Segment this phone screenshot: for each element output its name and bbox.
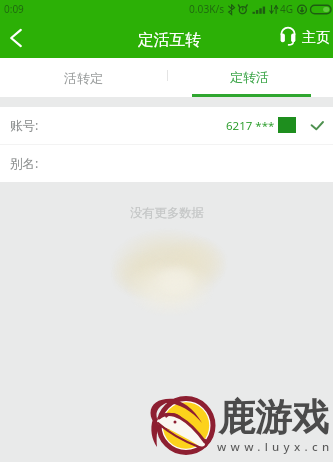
staticText: 定转活 — [230, 69, 269, 85]
button[interactable]: 账号: — [0, 107, 333, 144]
button[interactable]: Back — [0, 17, 31, 58]
staticText: 账号: — [10, 117, 39, 134]
button[interactable]: Customer service — [279, 28, 331, 47]
button[interactable]: 定转活 — [166, 58, 333, 97]
staticText: 别名: — [10, 155, 39, 172]
button[interactable]: 别名: — [0, 145, 333, 182]
staticText: 0:09 — [4, 2, 24, 16]
other: Selected — [311, 119, 324, 132]
staticText: 0.03K/s — [189, 2, 225, 16]
staticText: 主页 — [302, 29, 330, 47]
other: Customer service — [280, 27, 296, 46]
staticText: 定活互转 — [138, 30, 202, 50]
staticText: 没有更多数据 — [130, 205, 204, 220]
staticText: 6217 *** — [226, 118, 275, 134]
staticText: 活转定 — [64, 70, 103, 86]
staticText: 鹿游戏 — [218, 394, 329, 441]
staticText: www.luyx.cn — [217, 439, 333, 455]
button[interactable]: 活转定 — [0, 58, 166, 97]
staticText: 4G — [280, 2, 293, 16]
